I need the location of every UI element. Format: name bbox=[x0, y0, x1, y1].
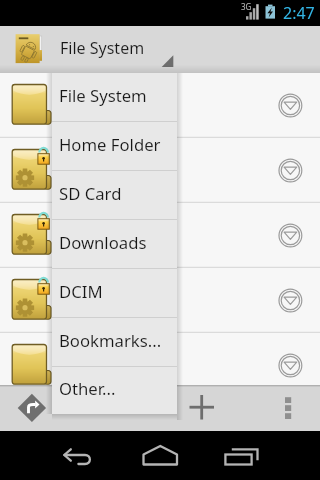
button[interactable]: File System bbox=[0, 26, 320, 73]
staticText: SD Card bbox=[59, 182, 122, 205]
button[interactable]: SD Card bbox=[52, 171, 177, 220]
staticText: File System bbox=[59, 84, 147, 107]
button[interactable] bbox=[0, 73, 320, 138]
button[interactable] bbox=[0, 203, 320, 268]
staticText: 3G bbox=[241, 1, 252, 12]
staticText: Bookmarks... bbox=[59, 329, 162, 352]
staticText: File System bbox=[60, 37, 145, 59]
button[interactable]: Bookmarks... bbox=[52, 318, 177, 367]
staticText: Other... bbox=[59, 377, 116, 400]
button[interactable]: Other... bbox=[52, 367, 177, 414]
button[interactable]: More options bbox=[266, 385, 310, 431]
button[interactable]: Home Folder bbox=[52, 122, 177, 171]
button[interactable]: DCIM bbox=[52, 269, 177, 318]
staticText: Downloads bbox=[59, 231, 147, 254]
button[interactable] bbox=[0, 138, 320, 203]
button[interactable]: File System bbox=[52, 73, 177, 122]
button[interactable] bbox=[0, 268, 320, 333]
button[interactable]: Add bbox=[178, 385, 226, 431]
button[interactable] bbox=[0, 333, 320, 398]
staticText: 2:47 bbox=[283, 2, 315, 24]
staticText: Home Folder bbox=[59, 133, 161, 156]
button[interactable]: Downloads bbox=[52, 220, 177, 269]
staticText: DCIM bbox=[59, 280, 103, 303]
button[interactable]: Navigate to folder bbox=[7, 385, 55, 431]
